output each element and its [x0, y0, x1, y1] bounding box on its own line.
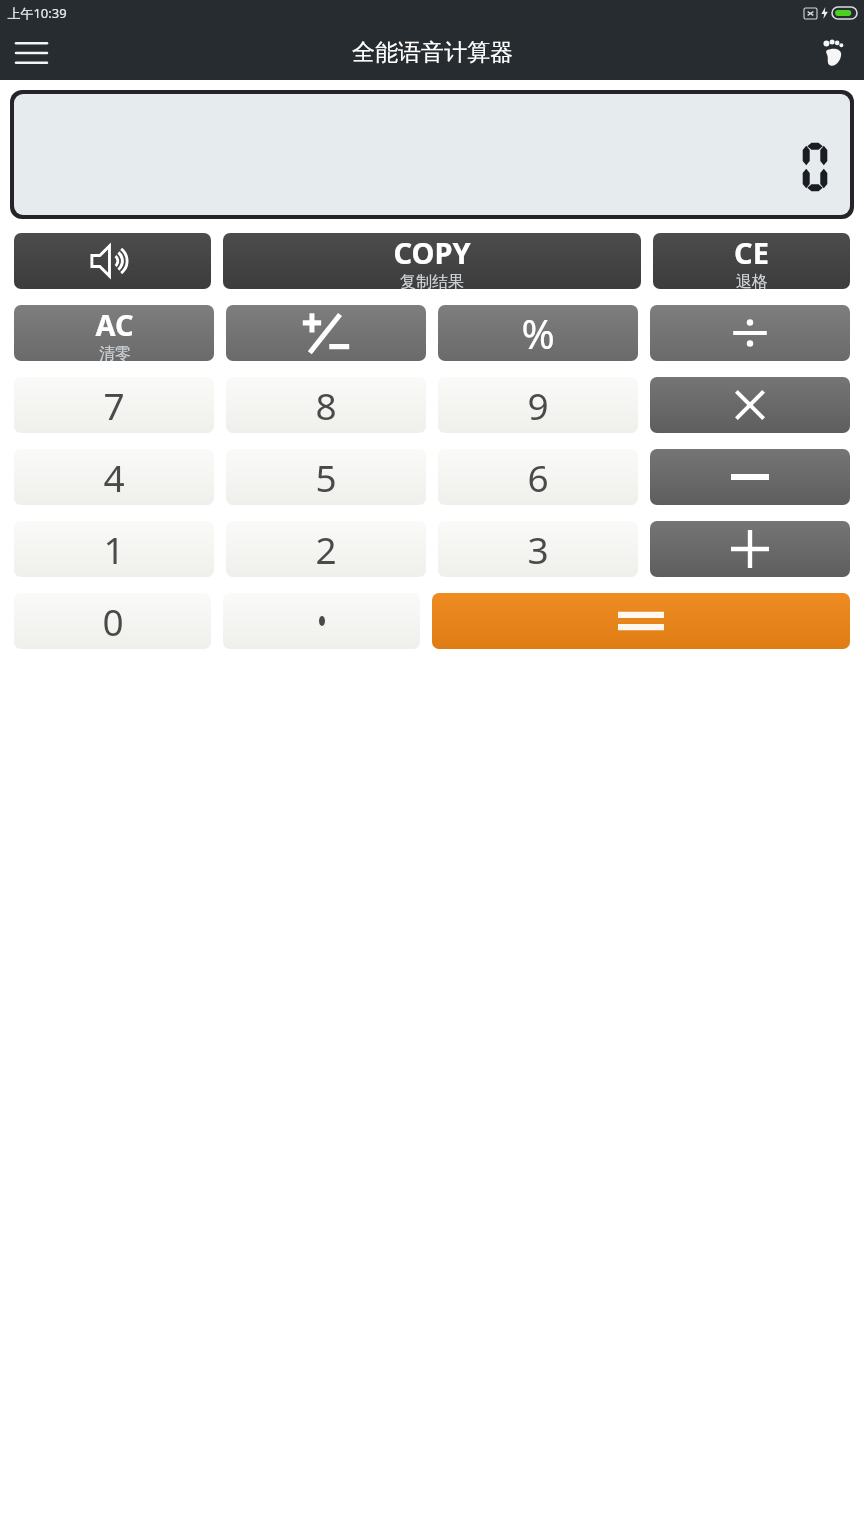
staticText: COPY	[393, 233, 471, 272]
button[interactable]: 5	[226, 449, 426, 505]
button[interactable]: 6	[438, 449, 638, 505]
button[interactable]: Divide	[650, 305, 850, 361]
button[interactable]: Menu	[8, 30, 54, 76]
staticText: 退格	[736, 272, 768, 289]
button[interactable]: Equals	[432, 593, 850, 649]
button[interactable]: 7	[14, 377, 214, 433]
button[interactable]: Operator	[650, 449, 850, 505]
button[interactable]: 8	[226, 377, 426, 433]
button[interactable]: 4	[14, 449, 214, 505]
button[interactable]: Plus minus	[226, 305, 426, 361]
staticText: 2	[315, 524, 337, 574]
staticText: 0	[102, 596, 124, 646]
button[interactable]: 3	[438, 521, 638, 577]
button[interactable]: %	[438, 305, 638, 361]
button[interactable]: Operator	[650, 377, 850, 433]
staticText: 全能语音计算器	[352, 38, 513, 67]
staticText: AC	[95, 305, 134, 344]
button[interactable]: CE	[653, 233, 850, 289]
button[interactable]: COPY	[223, 233, 641, 289]
staticText: 清零	[99, 344, 131, 361]
staticText: 7	[103, 380, 125, 430]
staticText: 6	[527, 452, 549, 502]
staticText: 9	[527, 380, 549, 430]
staticText: 1	[103, 524, 125, 574]
button[interactable]: 0	[14, 593, 211, 649]
button[interactable]: Speak result	[14, 233, 211, 289]
staticText: 上午10:39	[7, 4, 67, 22]
staticText: 4	[103, 452, 125, 502]
staticText: 3	[527, 524, 549, 574]
button[interactable]: 1	[14, 521, 214, 577]
button[interactable]: Footprint	[810, 30, 856, 76]
button[interactable]: Operator	[650, 521, 850, 577]
button[interactable]: AC	[14, 305, 214, 361]
button[interactable]: Decimal point	[223, 593, 420, 649]
staticText: %	[521, 306, 555, 360]
staticText: CE	[734, 233, 769, 272]
staticText: 5	[315, 452, 337, 502]
button[interactable]: 2	[226, 521, 426, 577]
button[interactable]: 9	[438, 377, 638, 433]
staticText: 8	[315, 380, 337, 430]
staticText: 复制结果	[400, 272, 464, 289]
